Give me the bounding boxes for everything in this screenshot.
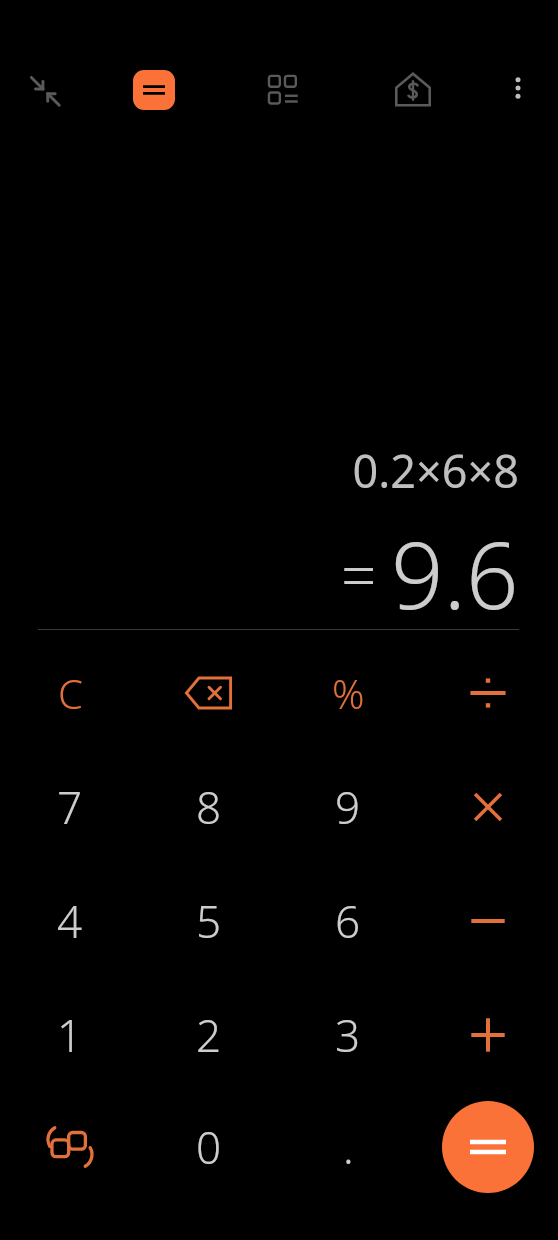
button[interactable]: Backspace [152, 636, 266, 750]
staticText: . [343, 1117, 354, 1177]
button[interactable]: Decimal point [291, 1090, 405, 1204]
staticText: 2 [196, 1005, 222, 1065]
button[interactable]: 9 [291, 750, 405, 864]
button[interactable]: 2 [152, 978, 266, 1092]
button[interactable]: Percent [291, 636, 405, 750]
button[interactable]: Add [431, 978, 545, 1092]
staticText: 7 [57, 777, 83, 837]
staticText: % [332, 666, 365, 720]
button[interactable]: Clear [13, 636, 127, 750]
button[interactable]: Converters [254, 60, 314, 120]
button[interactable]: Equals [442, 1101, 534, 1193]
button[interactable]: 8 [152, 750, 266, 864]
staticText: 9.6 [391, 511, 519, 636]
button[interactable]: Calculator [126, 62, 182, 118]
button[interactable]: 5 [152, 864, 266, 978]
staticText: = [341, 532, 377, 616]
staticText: 0.2×6×8 [352, 440, 519, 501]
button[interactable]: 0 [152, 1090, 266, 1204]
button[interactable]: Divide [431, 636, 545, 750]
staticText: 4 [57, 891, 83, 951]
staticText: 8 [196, 777, 222, 837]
staticText: 1 [57, 1005, 83, 1065]
button[interactable]: More options [490, 60, 546, 116]
staticText: 3 [335, 1005, 361, 1065]
button[interactable]: 1 [13, 978, 127, 1092]
staticText: C [58, 666, 83, 720]
staticText: 9 [335, 777, 361, 837]
button[interactable]: 3 [291, 978, 405, 1092]
button[interactable]: Subtract [431, 864, 545, 978]
button[interactable]: Unit converter [13, 1090, 127, 1204]
staticText: 0 [196, 1117, 222, 1177]
button[interactable]: 7 [13, 750, 127, 864]
button[interactable]: Collapse [14, 60, 76, 122]
button[interactable]: Multiply [431, 750, 545, 864]
button[interactable]: 4 [13, 864, 127, 978]
staticText: 5 [196, 891, 222, 951]
staticText: 6 [335, 891, 361, 951]
button[interactable]: 6 [291, 864, 405, 978]
button[interactable]: Mortgage [383, 60, 443, 120]
